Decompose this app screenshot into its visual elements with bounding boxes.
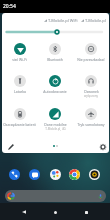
button[interactable]: Tryb samolotowy xyxy=(73,108,109,134)
button[interactable]: Dzwonek xyxy=(73,75,109,101)
button[interactable]: Dane mobilne xyxy=(37,108,73,134)
staticText: Oszczędzanie baterii xyxy=(3,122,36,127)
button[interactable]: Recent apps xyxy=(79,205,93,219)
staticText: Dzwonek xyxy=(84,89,99,94)
button[interactable]: Phone xyxy=(9,169,20,180)
button[interactable]: Assistant xyxy=(50,169,61,180)
staticText: 20:54 xyxy=(3,3,16,10)
button[interactable]: Edit tiles xyxy=(6,142,15,151)
button[interactable]: sieć Wi-Fi xyxy=(2,43,37,69)
button[interactable]: Nie przeszkadzać xyxy=(73,43,109,69)
button[interactable]: Autoobracanie xyxy=(37,75,73,101)
staticText: Nie przeszkadzać xyxy=(77,57,105,62)
button[interactable]: Voice search xyxy=(5,190,106,202)
button[interactable]: Camera xyxy=(89,169,100,180)
staticText: wyłączony xyxy=(84,94,98,98)
staticText: Dane mobilne xyxy=(44,122,67,127)
button[interactable]: Bluetooth xyxy=(37,43,73,69)
button[interactable]: Latarka xyxy=(2,75,37,101)
staticText: sieć Wi-Fi xyxy=(12,57,27,62)
staticText: T-Mobile.pl WiFi xyxy=(48,18,78,23)
staticText: Latarka xyxy=(14,89,26,94)
staticText: Autoobracanie xyxy=(43,89,67,94)
button[interactable]: Settings xyxy=(98,142,107,151)
button[interactable]: Back xyxy=(17,205,31,219)
button[interactable]: Home xyxy=(48,205,62,219)
staticText: T-Mobile.pl xyxy=(85,18,106,23)
staticText: T-Mobile.pl, 4G xyxy=(45,127,66,131)
button[interactable]: Messages xyxy=(29,169,40,180)
button[interactable]: Oszczędzanie baterii xyxy=(2,108,37,134)
staticText: Bluetooth xyxy=(47,57,63,62)
other: Voice search xyxy=(98,194,103,199)
staticText: Tryb samolotowy xyxy=(77,122,105,127)
button[interactable]: Chrome xyxy=(69,169,80,180)
